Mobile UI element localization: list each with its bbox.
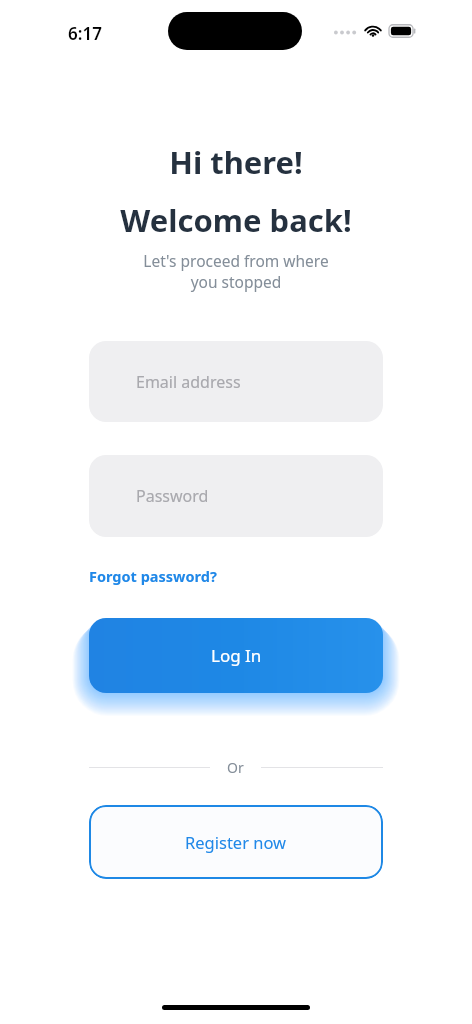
staticText: Log In: [211, 644, 262, 667]
staticText: Forgot password?: [89, 566, 217, 586]
staticText: Hi there!: [169, 141, 303, 183]
staticText: Register now: [185, 831, 287, 853]
other: Status icons: [332, 20, 438, 42]
staticText: 6:17: [68, 22, 102, 45]
staticText: Password: [136, 485, 209, 507]
button[interactable]: Forgot password?: [89, 563, 217, 589]
button[interactable]: Email address: [89, 341, 383, 422]
button[interactable]: Password: [89, 455, 383, 537]
staticText: Email address: [136, 371, 241, 393]
staticText: Welcome back!: [120, 199, 352, 241]
staticText: Or: [227, 758, 244, 777]
button[interactable]: Register now: [89, 805, 383, 879]
button[interactable]: Log In: [89, 618, 383, 693]
staticText: Let's proceed from where you stopped: [60, 250, 412, 293]
